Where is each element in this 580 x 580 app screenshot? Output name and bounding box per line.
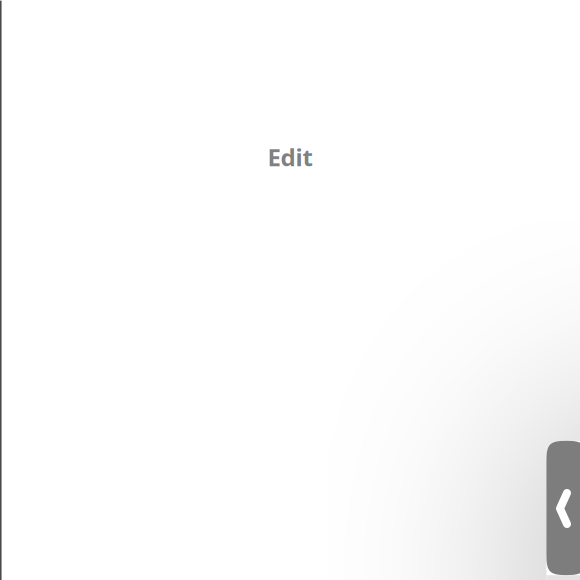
button[interactable]: Back xyxy=(546,441,580,575)
staticText: Edit xyxy=(267,141,312,173)
